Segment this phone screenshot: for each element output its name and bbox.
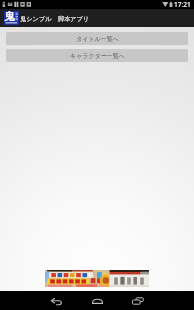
staticText: 鬼 — [4, 10, 15, 23]
button[interactable]: タイトル一覧へ — [6, 32, 188, 45]
staticText: 17:21 — [174, 0, 191, 9]
staticText: タイトル一覧へ — [76, 35, 119, 43]
button[interactable]: Advertisement — [45, 270, 149, 287]
staticText: 鬼シンプル 脚本アプリ — [20, 14, 90, 22]
button[interactable]: Back — [45, 292, 67, 310]
button[interactable]: Recent apps — [127, 292, 149, 310]
button[interactable]: Home — [86, 292, 108, 310]
staticText: キャラクター一覧へ — [70, 52, 125, 60]
button[interactable]: キャラクター一覧へ — [6, 49, 188, 62]
